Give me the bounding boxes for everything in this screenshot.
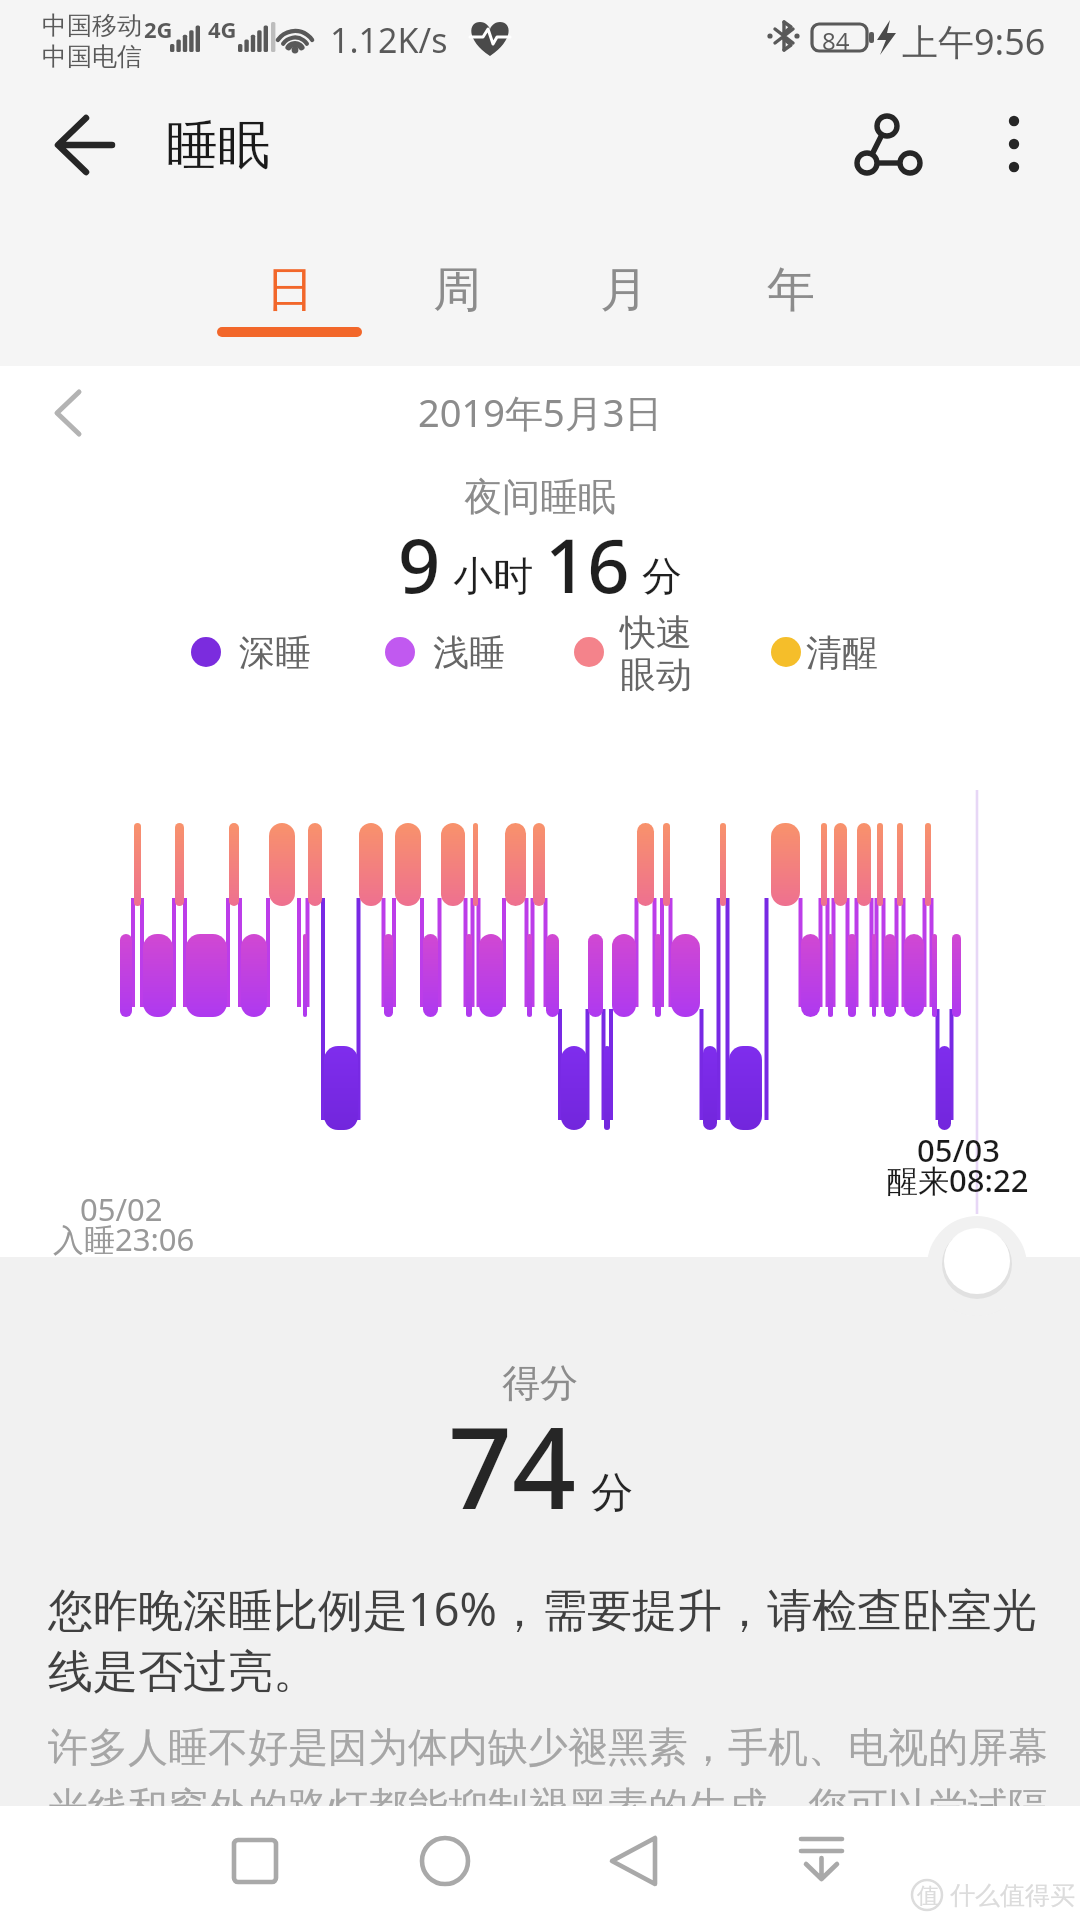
staticText: 醒来08:22	[887, 1159, 1029, 1201]
button[interactable]: 年	[707, 240, 874, 340]
staticText: 小时	[453, 551, 533, 601]
staticText: 光线和窗外的路灯都能抑制褪黑素的生成，您可以尝试隔	[48, 1782, 1048, 1832]
staticText: 线是否过亮。	[48, 1644, 318, 1701]
staticText: 16	[545, 514, 630, 615]
staticText: 74	[448, 1389, 577, 1542]
button[interactable]: 月	[540, 240, 707, 340]
button[interactable]	[540, 1806, 810, 1920]
staticText: 年	[767, 260, 815, 320]
staticText: 05/03	[917, 1129, 1000, 1171]
button[interactable]	[845, 103, 935, 189]
button[interactable]: 周	[373, 240, 540, 340]
staticText: 快速	[620, 610, 692, 655]
staticText: 清醒	[806, 630, 878, 675]
staticText: 分	[642, 551, 682, 601]
button[interactable]	[30, 380, 100, 450]
staticText: 2019年5月3日	[418, 386, 663, 438]
staticText: 05/02	[80, 1188, 163, 1230]
staticText: 深睡	[239, 630, 311, 675]
button[interactable]	[975, 103, 1055, 189]
button[interactable]	[810, 1806, 1080, 1920]
staticText: 中国移动	[42, 10, 142, 41]
button[interactable]	[0, 1806, 270, 1920]
staticText: 中国电信	[42, 41, 142, 72]
staticText: 4G	[208, 14, 237, 44]
staticText: 月	[600, 260, 648, 320]
staticText: 夜间睡眠	[464, 473, 616, 521]
button[interactable]	[944, 1228, 1010, 1294]
staticText: 日	[266, 260, 314, 320]
staticText: 入睡23:06	[53, 1218, 195, 1260]
button[interactable]	[30, 103, 130, 189]
staticText: 什么值得买	[950, 1880, 1075, 1911]
staticText: 眼动	[620, 652, 692, 697]
staticText: 2G	[144, 14, 173, 44]
staticText: 得分	[502, 1359, 578, 1407]
staticText: 1.12K/s	[330, 17, 448, 63]
button[interactable]: 日	[206, 240, 373, 340]
staticText: 浅睡	[433, 630, 505, 675]
staticText: 9	[398, 514, 441, 615]
button[interactable]	[270, 1806, 540, 1920]
staticText: 84	[822, 24, 850, 57]
staticText: 周	[433, 260, 481, 320]
staticText: 许多人睡不好是因为体内缺少褪黑素，手机、电视的屏幕	[48, 1722, 1048, 1772]
staticText: 睡眠	[166, 113, 270, 179]
staticText: 您昨晚深睡比例是16%，需要提升，请检查卧室光	[48, 1578, 1037, 1639]
staticText: 上午9:56	[902, 17, 1046, 66]
staticText: 值	[917, 1882, 939, 1910]
staticText: 分	[591, 1467, 633, 1520]
